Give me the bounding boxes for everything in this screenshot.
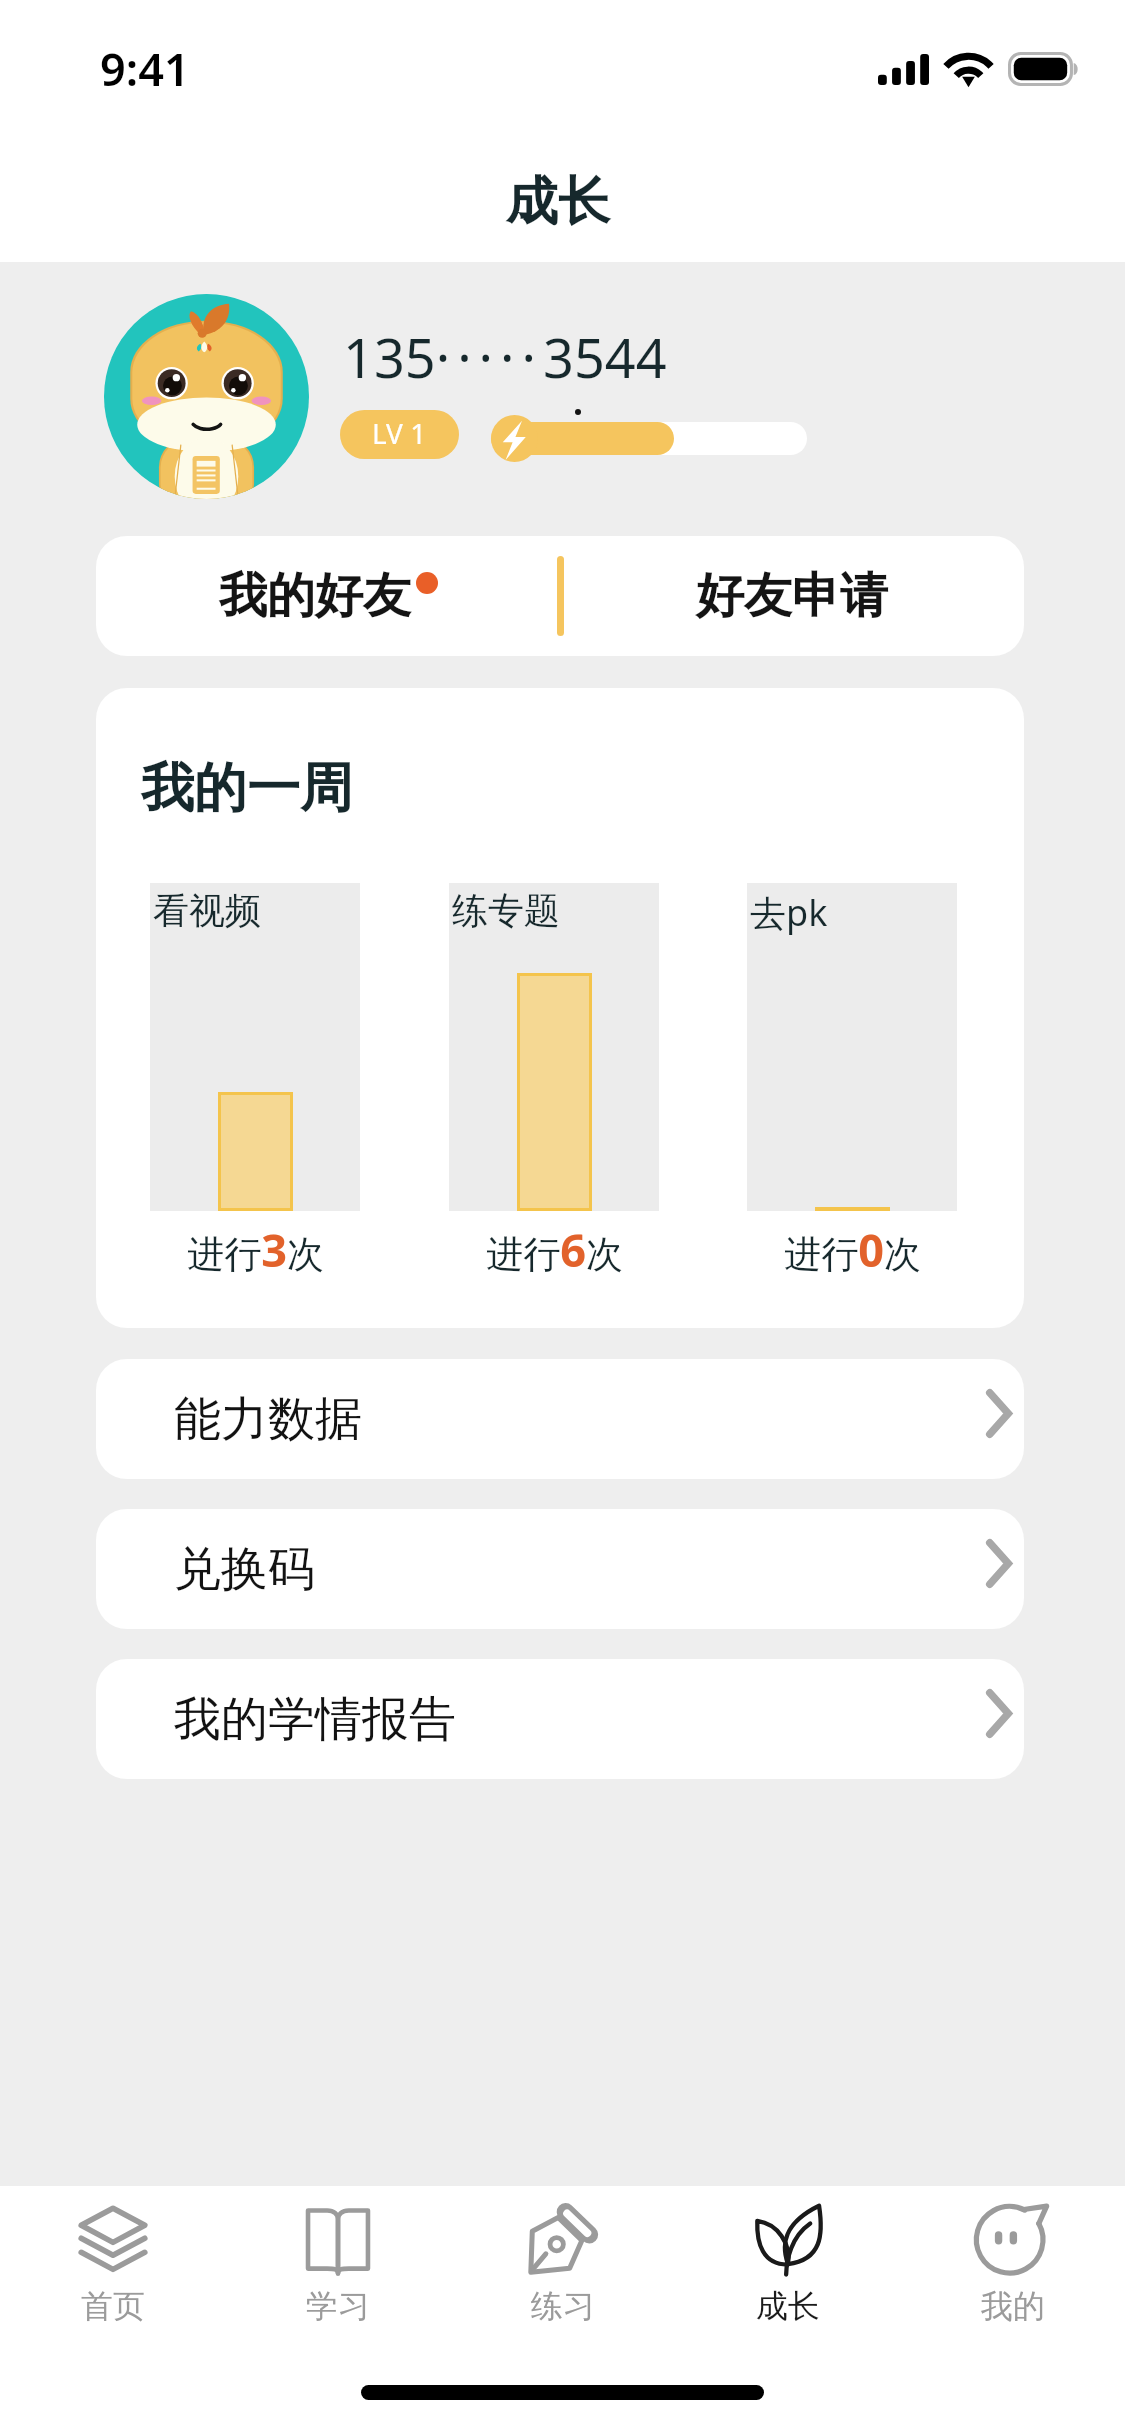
- button[interactable]: 兑换码: [96, 1509, 1024, 1629]
- button[interactable]: LV 1: [340, 410, 459, 459]
- staticText: 我的好友: [219, 566, 411, 626]
- staticText: 135·····3544: [343, 320, 667, 394]
- staticText: 看视频: [153, 888, 261, 933]
- staticText: 进行3次: [187, 1219, 324, 1280]
- staticText: 能力数据: [174, 1390, 362, 1449]
- staticText: 兑换码: [174, 1540, 315, 1599]
- staticText: 进行0次: [784, 1219, 921, 1280]
- staticText: 好友申请: [696, 566, 888, 626]
- button[interactable]: 练习: [450, 2186, 675, 2341]
- button[interactable]: 成长: [675, 2186, 900, 2341]
- staticText: 我的一周: [141, 755, 353, 822]
- button[interactable]: 首页: [0, 2186, 225, 2341]
- button[interactable]: 我的好友: [96, 536, 560, 656]
- button[interactable]: 学习: [225, 2186, 450, 2341]
- staticText: 练习: [531, 2286, 595, 2326]
- staticText: 我的学情报告: [174, 1690, 456, 1749]
- staticText: 首页: [81, 2286, 145, 2326]
- staticText: 成长: [756, 2286, 820, 2326]
- staticText: 去pk: [750, 888, 828, 937]
- staticText: 成长: [506, 169, 610, 235]
- staticText: 9:41: [100, 38, 190, 99]
- staticText: 进行6次: [486, 1219, 623, 1280]
- staticText: 学习: [306, 2286, 370, 2326]
- button[interactable]: 能力数据: [96, 1359, 1024, 1479]
- staticText: 练专题: [452, 888, 560, 933]
- button[interactable]: 用户头像: [104, 294, 309, 499]
- button[interactable]: 好友申请: [560, 536, 1024, 656]
- button[interactable]: 我的: [900, 2186, 1125, 2341]
- staticText: LV 1: [372, 414, 427, 452]
- staticText: 我的: [981, 2286, 1045, 2326]
- button[interactable]: 我的学情报告: [96, 1659, 1024, 1779]
